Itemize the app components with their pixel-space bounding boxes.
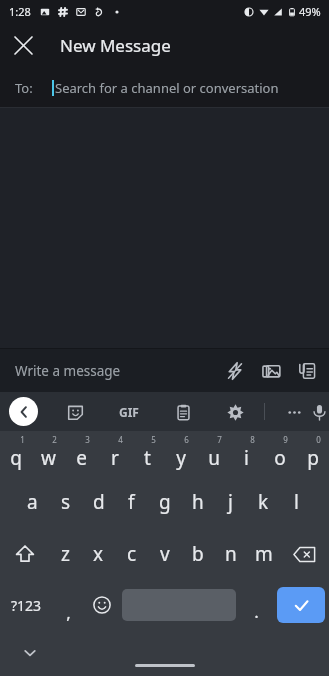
- button[interactable]: ?123: [0, 580, 52, 630]
- staticText: j: [228, 489, 233, 515]
- staticText: 49%: [299, 4, 321, 19]
- button[interactable]: GIF: [112, 395, 146, 429]
- staticText: q: [10, 445, 22, 471]
- button[interactable]: 2: [32, 431, 65, 476]
- button[interactable]: g: [148, 476, 181, 528]
- staticText: k: [258, 489, 269, 515]
- staticText: ?123: [11, 596, 42, 615]
- staticText: .: [254, 600, 259, 623]
- staticText: n: [225, 541, 237, 567]
- button[interactable]: Stickers: [60, 397, 90, 427]
- staticText: 8: [250, 434, 255, 445]
- button[interactable]: a: [16, 476, 49, 528]
- button[interactable]: x: [82, 528, 115, 580]
- button[interactable]: Photos: [253, 353, 289, 389]
- staticText: 4: [118, 434, 123, 445]
- button[interactable]: h: [181, 476, 214, 528]
- button[interactable]: Enter: [277, 587, 325, 623]
- staticText: a: [27, 489, 38, 515]
- button[interactable]: l: [280, 476, 313, 528]
- staticText: o: [274, 445, 286, 471]
- button[interactable]: b: [181, 528, 214, 580]
- button[interactable]: Close: [0, 22, 47, 69]
- button[interactable]: s: [49, 476, 82, 528]
- button[interactable]: 6: [164, 431, 197, 476]
- button[interactable]: Shift: [0, 528, 49, 580]
- button[interactable]: 9: [263, 431, 296, 476]
- button[interactable]: n: [214, 528, 247, 580]
- staticText: u: [208, 445, 220, 471]
- staticText: 1:28: [9, 4, 31, 19]
- staticText: h: [192, 489, 204, 515]
- button[interactable]: Clipboard: [168, 397, 198, 427]
- staticText: e: [76, 445, 87, 471]
- staticText: 9: [283, 434, 288, 445]
- button[interactable]: j: [214, 476, 247, 528]
- button[interactable]: d: [82, 476, 115, 528]
- staticText: i: [244, 445, 249, 471]
- staticText: 2: [52, 434, 57, 445]
- staticText: b: [192, 541, 204, 567]
- staticText: GIF: [119, 404, 139, 420]
- staticText: 1: [20, 434, 25, 445]
- staticText: Write a message: [15, 362, 121, 380]
- staticText: s: [61, 489, 71, 515]
- button[interactable]: Write a message: [15, 362, 217, 380]
- staticText: ,: [66, 601, 71, 624]
- button[interactable]: v: [148, 528, 181, 580]
- staticText: p: [307, 445, 319, 471]
- button[interactable]: 3: [65, 431, 98, 476]
- button[interactable]: m: [247, 528, 280, 580]
- button[interactable]: More: [279, 397, 309, 427]
- staticText: f: [128, 489, 135, 515]
- button[interactable]: z: [49, 528, 82, 580]
- button[interactable]: f: [115, 476, 148, 528]
- staticText: v: [160, 541, 170, 567]
- button[interactable]: Shortcuts: [217, 353, 253, 389]
- button[interactable]: Voice input: [309, 395, 329, 429]
- staticText: 0: [316, 434, 321, 445]
- staticText: z: [61, 541, 70, 567]
- staticText: y: [176, 445, 186, 471]
- button[interactable]: Backspace: [280, 528, 329, 580]
- button[interactable]: 7: [197, 431, 230, 476]
- button[interactable]: 8: [230, 431, 263, 476]
- staticText: x: [93, 541, 104, 567]
- button[interactable]: ,: [52, 580, 85, 630]
- button[interactable]: k: [247, 476, 280, 528]
- button[interactable]: 5: [131, 431, 164, 476]
- staticText: t: [144, 445, 151, 471]
- button[interactable]: To:: [15, 69, 329, 107]
- button[interactable]: 0: [296, 431, 329, 476]
- button[interactable]: Settings: [220, 397, 250, 427]
- button[interactable]: Hide keyboard: [18, 641, 42, 665]
- button[interactable]: 1: [0, 431, 32, 476]
- staticText: w: [41, 445, 56, 471]
- staticText: Search for a channel or conversation: [55, 79, 279, 97]
- button[interactable]: c: [115, 528, 148, 580]
- button[interactable]: 4: [98, 431, 131, 476]
- staticText: 7: [217, 434, 222, 445]
- staticText: d: [93, 489, 105, 515]
- button[interactable]: Back: [9, 397, 38, 426]
- staticText: To:: [15, 79, 33, 97]
- staticText: r: [111, 445, 119, 471]
- staticText: 5: [151, 434, 156, 445]
- button[interactable]: Emoji: [85, 580, 118, 630]
- staticText: 6: [184, 434, 189, 445]
- staticText: g: [159, 489, 171, 515]
- staticText: 3: [85, 434, 90, 445]
- button[interactable]: .: [240, 580, 273, 630]
- staticText: New Message: [60, 34, 171, 57]
- button[interactable]: Attach file: [289, 353, 325, 389]
- staticText: l: [294, 489, 299, 515]
- staticText: m: [255, 541, 273, 567]
- staticText: c: [127, 541, 137, 567]
